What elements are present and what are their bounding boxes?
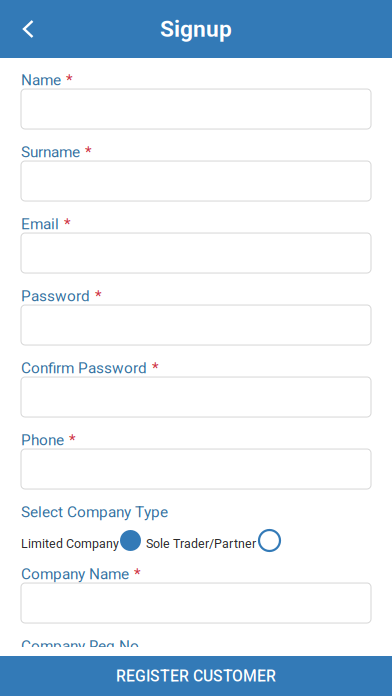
button[interactable]: Back xyxy=(0,6,46,52)
staticText: Phone xyxy=(21,431,64,449)
staticText: Select Company Type xyxy=(21,503,168,521)
staticText: REGISTER CUSTOMER xyxy=(116,667,276,685)
staticText: Limited Company xyxy=(21,536,119,551)
button[interactable]: Limited Company xyxy=(119,530,146,551)
staticText: * xyxy=(85,143,92,161)
staticText: * xyxy=(152,359,159,377)
staticText: * xyxy=(95,287,102,305)
staticText: Name xyxy=(21,71,61,89)
staticText: Email xyxy=(21,215,59,233)
staticText: * xyxy=(69,431,76,449)
button[interactable]: REGISTER CUSTOMER xyxy=(0,656,392,696)
button[interactable]: Sole Trader or Partner xyxy=(256,530,280,551)
staticText: * xyxy=(64,215,71,233)
staticText: Company Name xyxy=(21,565,129,583)
staticText: Confirm Password xyxy=(21,359,147,377)
staticText: Surname xyxy=(21,143,80,161)
staticText: * xyxy=(66,71,73,89)
staticText: Company Reg No xyxy=(21,637,139,655)
staticText: * xyxy=(134,565,141,583)
staticText: Signup xyxy=(160,16,232,42)
staticText: Sole Trader/Partner xyxy=(146,536,256,551)
staticText: Password xyxy=(21,287,90,305)
